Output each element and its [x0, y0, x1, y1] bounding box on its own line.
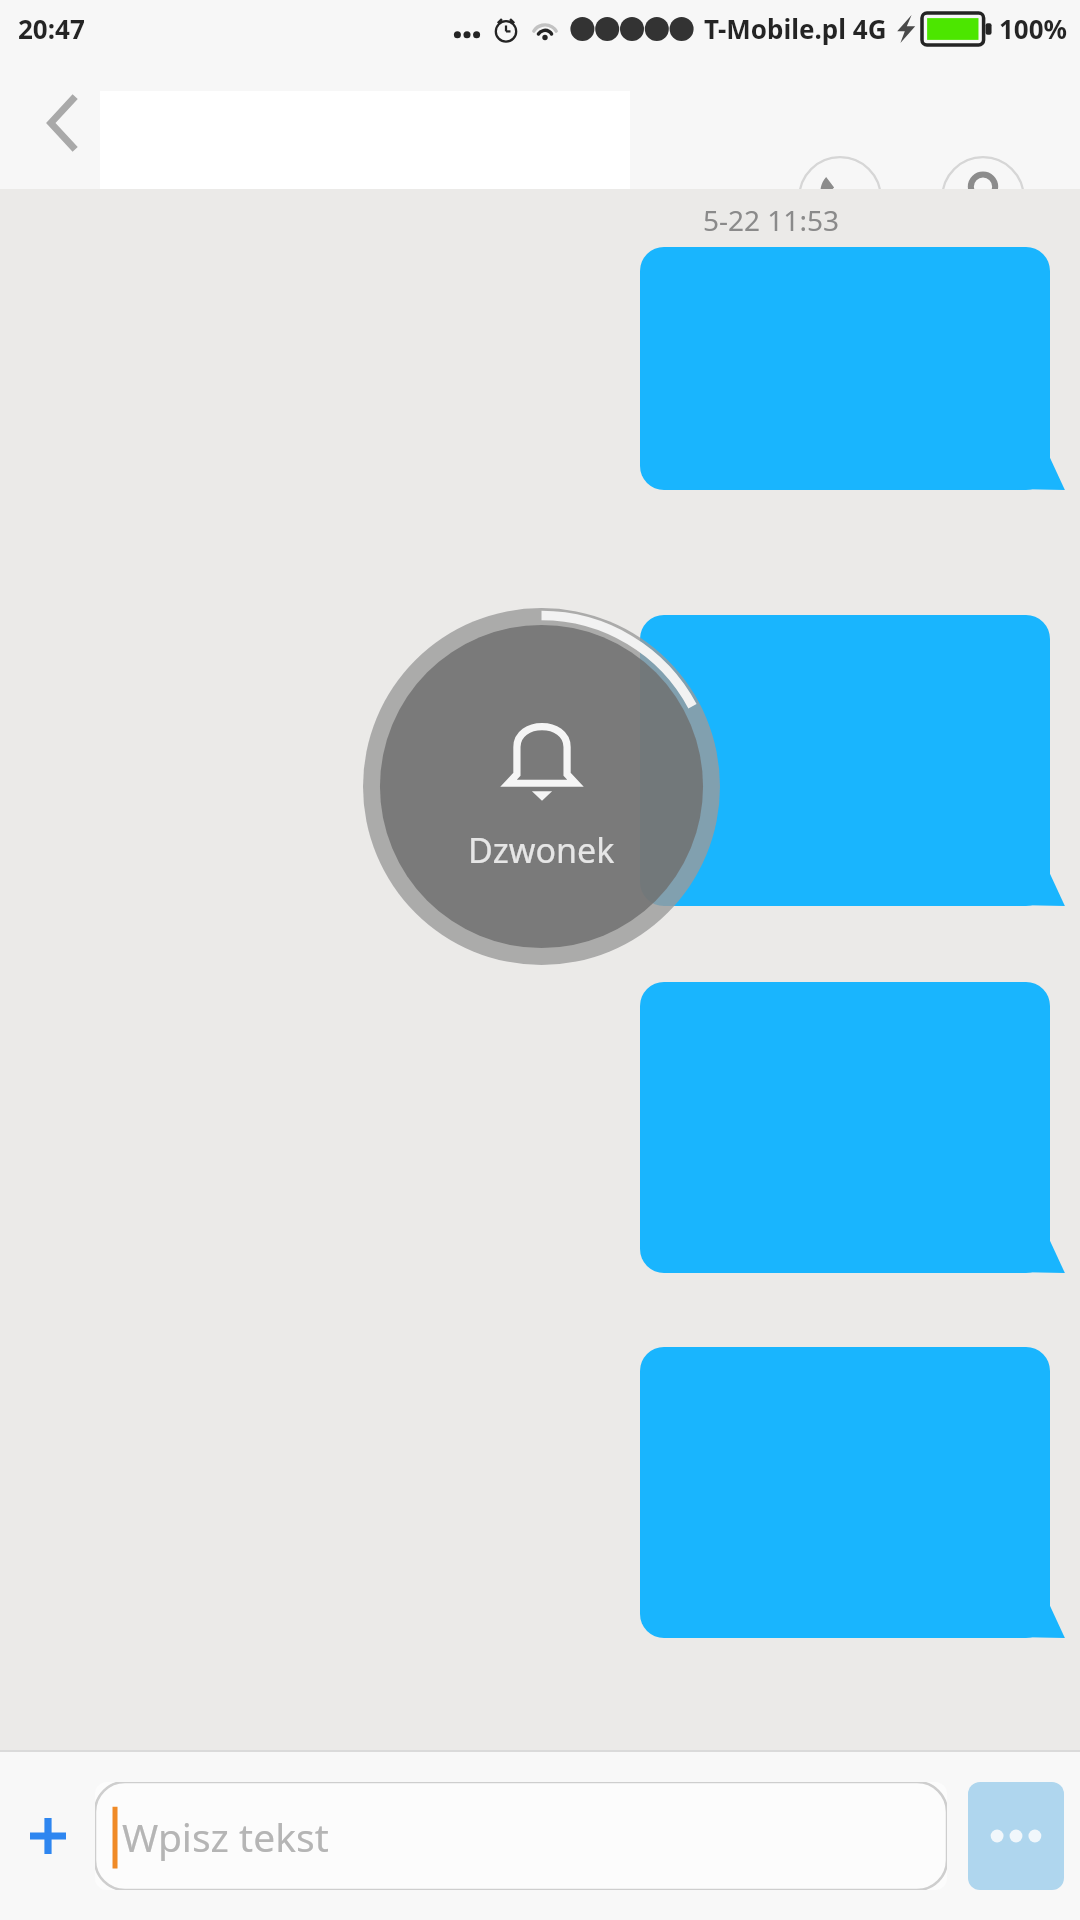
- staticText: Wpisz tekst: [122, 1810, 329, 1863]
- staticText: T-Mobile.pl 4G: [704, 11, 887, 46]
- staticText: 5-22 11:53: [703, 201, 839, 239]
- staticText: 20:47: [18, 11, 85, 46]
- button[interactable]: [640, 1347, 1066, 1638]
- button[interactable]: Add attachment: [12, 1800, 84, 1872]
- button[interactable]: Back: [26, 86, 100, 160]
- button[interactable]: Contact info: [941, 156, 1025, 240]
- button[interactable]: [640, 247, 1066, 490]
- staticText: 100%: [999, 11, 1068, 46]
- button[interactable]: [640, 615, 1066, 906]
- button[interactable]: [640, 982, 1066, 1273]
- button[interactable]: Dzwonek: [363, 608, 720, 965]
- button[interactable]: Wpisz tekst: [95, 1782, 947, 1890]
- staticText: Dzwonek: [468, 827, 615, 873]
- button[interactable]: Call: [798, 156, 882, 240]
- button[interactable]: More options: [968, 1782, 1064, 1890]
